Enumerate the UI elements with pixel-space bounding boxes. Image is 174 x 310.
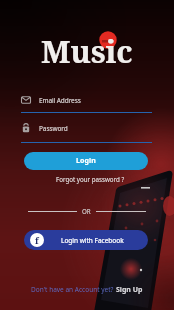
staticText: Email Address [39,96,81,105]
staticText: Forgot your password ? [56,175,125,183]
staticText: Music [41,30,133,68]
staticText: Login with Facebook [61,236,124,245]
button[interactable]: Email Address [21,92,152,108]
staticText: Don't have an Account yet? [31,285,116,294]
staticText: OR [82,207,91,215]
staticText: Password [39,124,68,133]
staticText: Login [76,156,96,166]
button[interactable]: Don't have an Account yet? [0,283,174,296]
button[interactable]: Login [24,152,148,170]
staticText: Sign Up [116,285,143,295]
button[interactable]: Forgot your password ? [3,173,174,184]
staticText: f [35,234,39,246]
button[interactable]: f [24,230,148,250]
button[interactable]: Password [21,120,152,136]
